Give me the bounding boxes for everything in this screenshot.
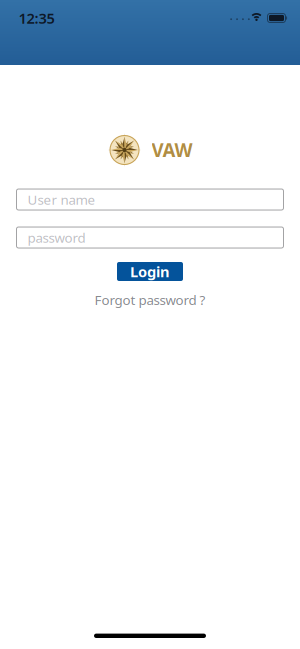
staticText: VAW (151, 138, 192, 162)
button[interactable]: password (16, 227, 283, 248)
button[interactable]: Login (117, 262, 183, 281)
staticText: User name (27, 191, 95, 208)
button[interactable]: User name (16, 189, 283, 210)
button[interactable]: Forgot password ? (94, 291, 205, 309)
staticText: password (27, 229, 85, 246)
staticText: Login (130, 262, 170, 281)
staticText: 12:35 (18, 8, 54, 28)
staticText: Forgot password ? (94, 291, 205, 309)
